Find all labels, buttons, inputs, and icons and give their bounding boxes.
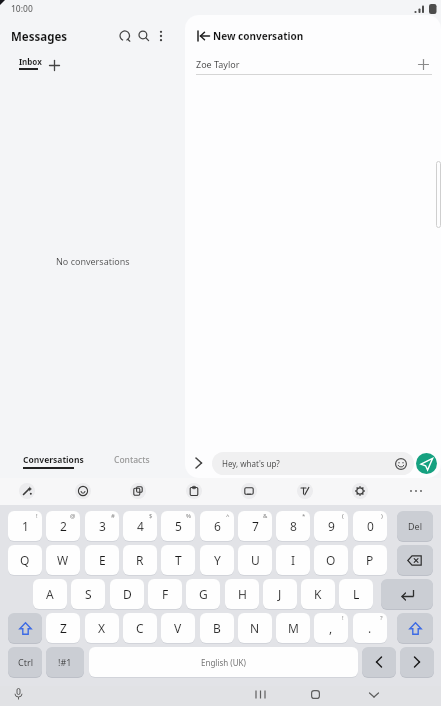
button[interactable]: Hey, what's up? — [212, 452, 414, 475]
button[interactable] — [362, 647, 396, 677]
button[interactable] — [397, 613, 433, 643]
staticText: , — [329, 620, 333, 636]
button[interactable] — [381, 579, 433, 609]
button[interactable]: N — [238, 613, 272, 643]
button[interactable] — [352, 483, 368, 499]
button[interactable]: !#1 — [46, 647, 84, 677]
button[interactable] — [297, 483, 313, 499]
button[interactable] — [49, 60, 60, 71]
staticText: Messages — [11, 29, 68, 45]
button[interactable] — [311, 690, 320, 699]
staticText: # — [111, 512, 115, 520]
button[interactable] — [395, 458, 407, 470]
staticText: ? — [380, 614, 383, 622]
staticText: U — [251, 552, 260, 568]
button[interactable]: W — [46, 545, 80, 575]
button[interactable]: L — [339, 579, 373, 609]
button[interactable]: Inbox — [14, 54, 37, 65]
button[interactable]: X — [85, 613, 119, 643]
button[interactable]: D — [110, 579, 144, 609]
button[interactable]: 9 — [314, 511, 348, 541]
button[interactable]: 7 — [238, 511, 272, 541]
staticText: Hey, what's up? — [222, 458, 280, 469]
staticText: D — [123, 586, 132, 602]
button[interactable] — [416, 453, 437, 474]
button[interactable]: 8 — [276, 511, 310, 541]
staticText: New conversation — [213, 29, 304, 43]
button[interactable]: H — [225, 579, 259, 609]
button[interactable]: Conversations — [18, 452, 79, 464]
button[interactable]: T — [161, 545, 195, 575]
button[interactable]: C — [123, 613, 157, 643]
button[interactable]: M — [276, 613, 310, 643]
button[interactable]: 5 — [161, 511, 195, 541]
button[interactable] — [157, 30, 165, 42]
button[interactable]: 4 — [123, 511, 157, 541]
button[interactable]: English (UK) — [89, 647, 358, 677]
staticText: Q — [20, 552, 30, 568]
button[interactable]: S — [71, 579, 105, 609]
button[interactable]: B — [200, 613, 234, 643]
button[interactable] — [255, 690, 267, 699]
button[interactable]: V — [161, 613, 195, 643]
button[interactable]: U — [238, 545, 272, 575]
button[interactable]: G — [186, 579, 220, 609]
button[interactable] — [14, 688, 23, 701]
button[interactable]: Z — [46, 613, 80, 643]
button[interactable] — [138, 30, 150, 42]
button[interactable]: Del — [397, 511, 433, 541]
button[interactable]: 6 — [200, 511, 234, 541]
button[interactable]: 2 — [46, 511, 80, 541]
staticText: S — [85, 586, 92, 602]
staticText: ! — [36, 512, 38, 520]
button[interactable]: J — [263, 579, 297, 609]
button[interactable] — [408, 483, 424, 499]
button[interactable]: I — [276, 545, 310, 575]
button[interactable] — [119, 30, 131, 42]
staticText: A — [46, 586, 54, 602]
button[interactable]: 0 — [353, 511, 387, 541]
button[interactable]: Contacts — [108, 452, 144, 464]
staticText: Ctrl — [18, 656, 33, 668]
button[interactable]: R — [123, 545, 157, 575]
button[interactable] — [19, 483, 35, 499]
button[interactable]: P — [353, 545, 387, 575]
button[interactable] — [418, 59, 429, 70]
staticText: C — [136, 620, 144, 636]
staticText: T — [175, 552, 182, 568]
staticText: Inbox — [19, 56, 42, 67]
button[interactable]: O — [314, 545, 348, 575]
button[interactable] — [130, 483, 146, 499]
staticText: Zoe Taylor — [196, 58, 240, 70]
button[interactable] — [369, 692, 379, 698]
button[interactable] — [8, 613, 42, 643]
staticText: & — [263, 512, 268, 520]
staticText: M — [288, 620, 299, 636]
button[interactable]: , — [314, 613, 348, 643]
staticText: N — [250, 620, 260, 636]
button[interactable] — [195, 457, 203, 469]
staticText: F — [162, 586, 169, 602]
staticText: % — [186, 512, 191, 520]
button[interactable]: K — [301, 579, 335, 609]
button[interactable]: 1 — [8, 511, 42, 541]
button[interactable]: . — [353, 613, 387, 643]
button[interactable] — [197, 30, 210, 42]
button[interactable] — [400, 647, 434, 677]
staticText: 10:00 — [11, 3, 33, 15]
button[interactable]: A — [33, 579, 67, 609]
staticText: !#1 — [58, 656, 72, 668]
button[interactable] — [241, 483, 257, 499]
button[interactable] — [397, 545, 433, 575]
button[interactable]: Q — [8, 545, 42, 575]
button[interactable]: 3 — [85, 511, 119, 541]
staticText: . — [368, 620, 372, 636]
button[interactable]: F — [148, 579, 182, 609]
button[interactable]: E — [85, 545, 119, 575]
button[interactable]: Ctrl — [8, 647, 42, 677]
button[interactable]: Y — [200, 545, 234, 575]
staticText: Z — [60, 620, 67, 636]
button[interactable] — [186, 483, 202, 499]
staticText: 3 — [99, 518, 106, 534]
button[interactable] — [75, 483, 91, 499]
